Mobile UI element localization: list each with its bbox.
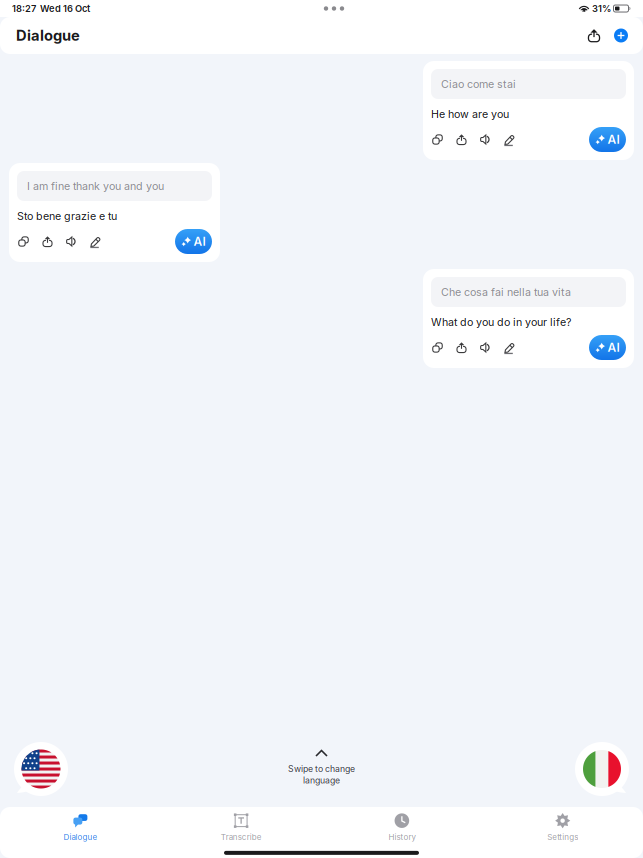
button[interactable]: Edit (504, 127, 528, 152)
button[interactable]: New dialogue (608, 22, 634, 48)
staticText: Settings (547, 832, 578, 842)
button[interactable]: Transcribe (161, 806, 322, 847)
staticText: History (388, 832, 415, 842)
button[interactable]: Speak (480, 127, 504, 152)
button[interactable]: Edit (90, 229, 114, 254)
staticText: Wed 16 Oct (36, 3, 90, 14)
button[interactable]: Speak (480, 335, 504, 360)
button[interactable]: Target language Italian (575, 742, 629, 796)
staticText: What do you do in your life? (431, 315, 571, 328)
staticText: 31% (590, 3, 613, 14)
staticText: Swipe to change (288, 763, 355, 774)
staticText: AI (193, 234, 205, 249)
button[interactable]: Share (456, 335, 480, 360)
button[interactable]: Copy (432, 127, 456, 152)
button[interactable]: Source language English (14, 742, 68, 796)
staticText: Sto bene grazie e tu (17, 209, 117, 222)
staticText: Transcribe (221, 832, 262, 842)
button[interactable]: Share (42, 229, 66, 254)
staticText: Dialogue (63, 832, 97, 842)
button[interactable]: Copy (432, 335, 456, 360)
button[interactable]: History (321, 806, 482, 847)
button[interactable]: Speak (66, 229, 90, 254)
staticText: AI (607, 132, 619, 147)
staticText: AI (607, 340, 619, 355)
button[interactable]: AI (589, 335, 626, 360)
staticText: language (303, 775, 340, 785)
staticText: 18:27 (12, 3, 36, 14)
staticText: Dialogue (16, 27, 80, 44)
button[interactable]: Edit (504, 335, 528, 360)
button[interactable]: Dialogue (0, 806, 161, 847)
button[interactable]: Copy (18, 229, 42, 254)
button[interactable]: Settings (482, 806, 643, 847)
button[interactable]: AI (175, 229, 212, 254)
staticText: Che cosa fai nella tua vita (441, 285, 571, 298)
button[interactable]: AI (589, 127, 626, 152)
staticText: He how are you (431, 107, 509, 120)
staticText: Ciao come stai (441, 77, 516, 90)
staticText: I am fine thank you and you (27, 179, 164, 192)
button[interactable]: Share (580, 22, 608, 48)
button[interactable]: Share (456, 127, 480, 152)
